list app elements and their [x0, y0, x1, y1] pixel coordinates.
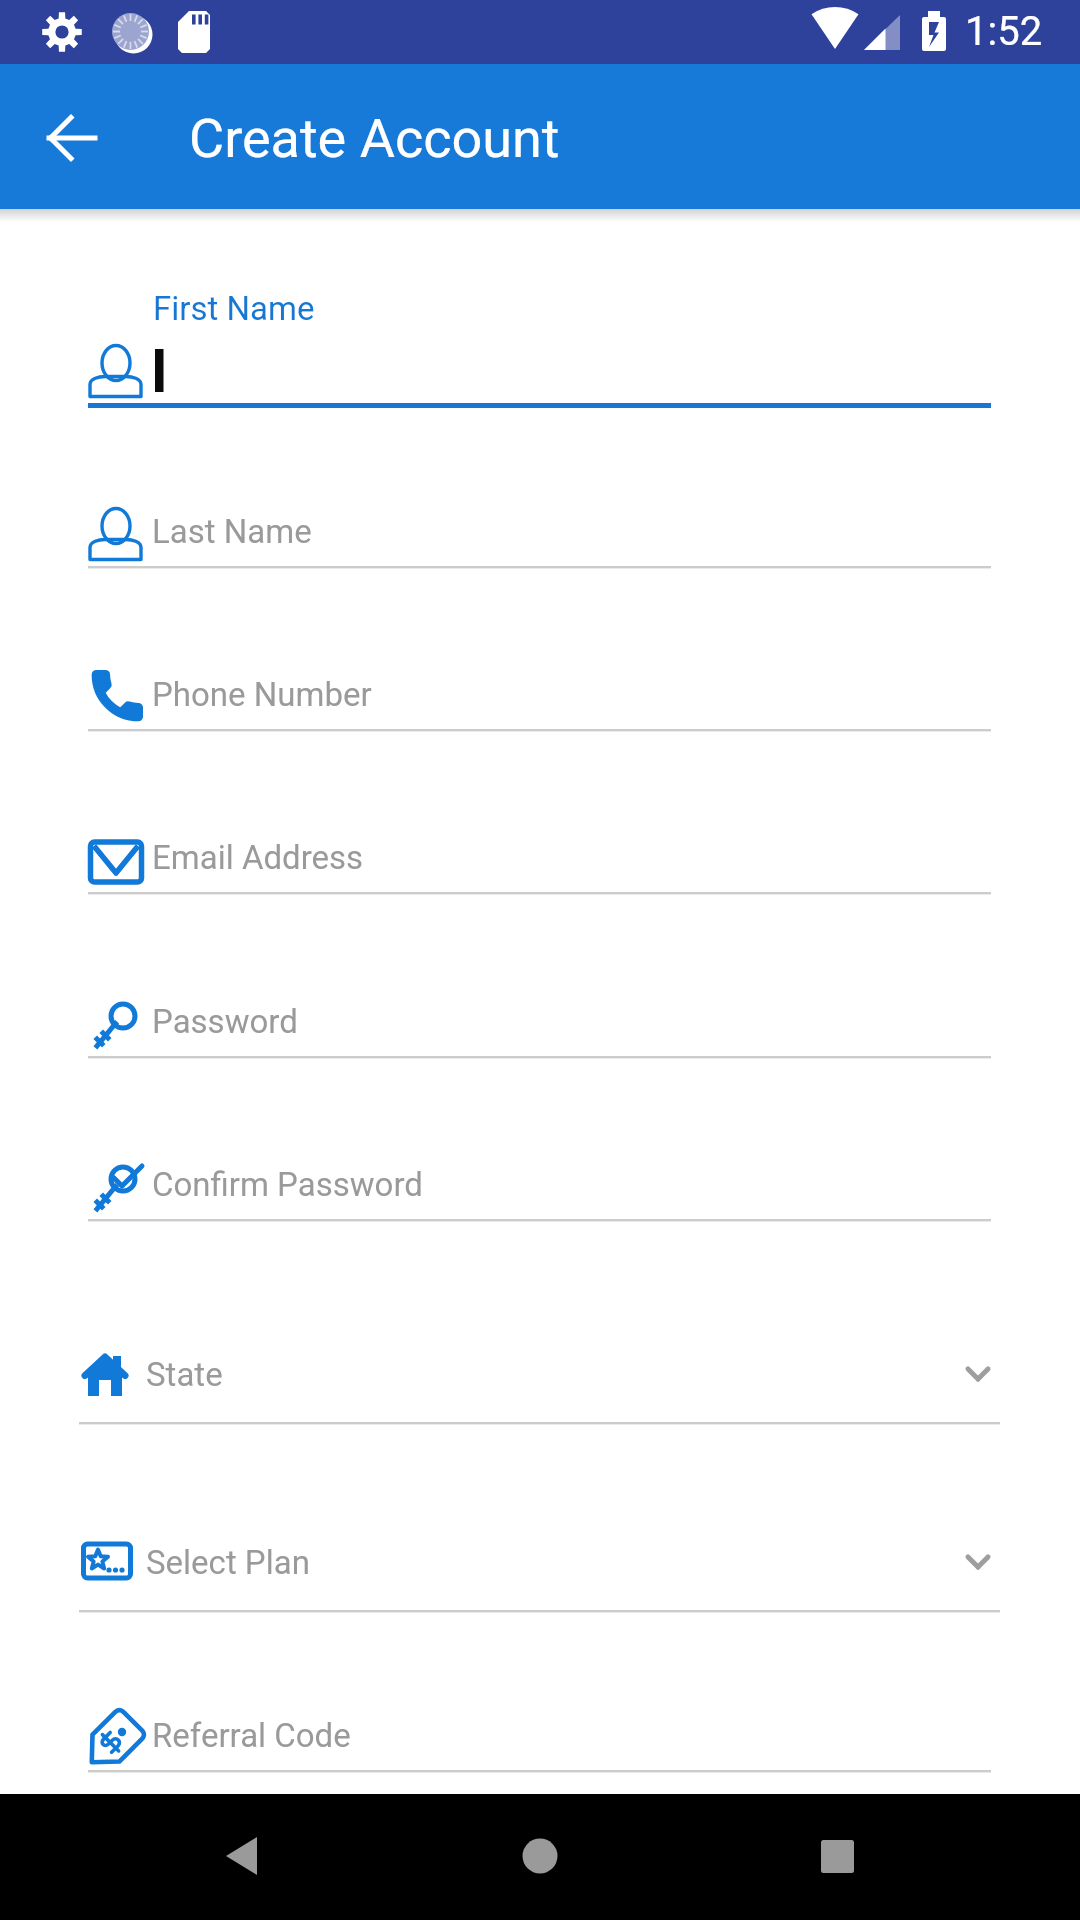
staticText: 1:52	[965, 8, 1043, 55]
staticText: State	[146, 1355, 223, 1394]
button[interactable]: Recent apps	[764, 1794, 914, 1920]
staticText: Password	[152, 1002, 298, 1041]
staticText: Select Plan	[146, 1543, 310, 1582]
staticText: Confirm Password	[152, 1165, 423, 1204]
button[interactable]: Home	[465, 1794, 615, 1920]
button[interactable]: State	[0, 1302, 1080, 1432]
staticText: Referral Code	[152, 1716, 351, 1755]
button[interactable]: Select Plan	[0, 1490, 1080, 1620]
button[interactable]: Email Address	[0, 772, 1080, 902]
button[interactable]: Password	[0, 936, 1080, 1066]
staticText: Email Address	[152, 838, 364, 877]
staticText: Create Account	[189, 107, 560, 170]
staticText: First Name	[153, 289, 315, 328]
button[interactable]: First Name	[0, 283, 1080, 413]
button[interactable]: Last Name	[0, 446, 1080, 576]
button[interactable]: Back	[180, 1794, 330, 1920]
button[interactable]: Phone Number	[0, 609, 1080, 739]
button[interactable]: Confirm Password	[0, 1099, 1080, 1229]
staticText: Last Name	[152, 512, 312, 551]
button[interactable]: Referral Code	[0, 1650, 1080, 1780]
staticText: Phone Number	[152, 675, 372, 714]
button[interactable]: Back	[20, 74, 112, 166]
